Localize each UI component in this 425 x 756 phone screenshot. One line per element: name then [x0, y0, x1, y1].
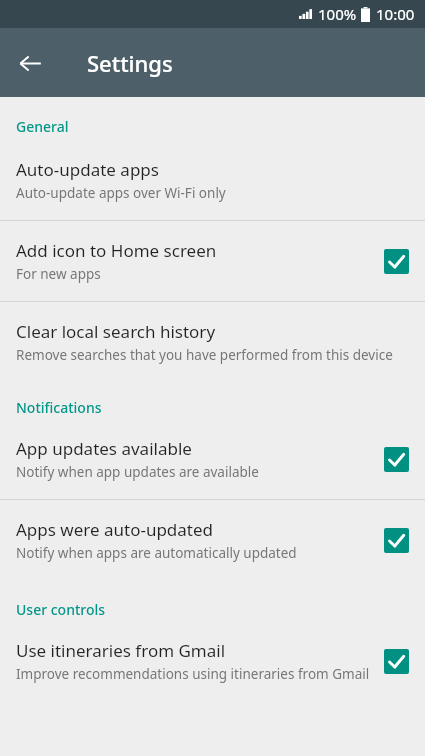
staticText: General [16, 117, 69, 136]
button[interactable]: Navigate up [8, 41, 52, 85]
button[interactable]: Toggle setting [384, 447, 409, 472]
button[interactable]: Auto-update apps [0, 136, 425, 220]
staticText: User controls [16, 600, 106, 619]
button[interactable]: Toggle setting [384, 649, 409, 674]
button[interactable]: Toggle setting [384, 249, 409, 274]
button[interactable]: App updates available [0, 417, 425, 499]
staticText: Notify when app updates are available [16, 463, 259, 481]
button[interactable]: Apps were auto-updated [0, 500, 425, 580]
staticText: Use itineraries from Gmail [16, 639, 226, 662]
staticText: Auto-update apps [16, 158, 159, 181]
staticText: Improve recommendations using itinerarie… [16, 665, 370, 683]
staticText: Add icon to Home screen [16, 239, 217, 262]
staticText: Auto-update apps over Wi-Fi only [16, 184, 226, 202]
button[interactable]: Clear local search history [0, 302, 425, 380]
button[interactable]: Use itineraries from Gmail [0, 619, 425, 701]
button[interactable]: Add icon to Home screen [0, 221, 425, 301]
staticText: Apps were auto-updated [16, 518, 214, 541]
staticText: Settings [87, 48, 173, 78]
staticText: Notifications [16, 398, 102, 417]
staticText: 10:00 [376, 4, 415, 24]
button[interactable]: Toggle setting [384, 528, 409, 553]
staticText: 100% [318, 4, 357, 24]
staticText: App updates available [16, 437, 192, 460]
staticText: Remove searches that you have performed … [16, 346, 393, 364]
staticText: Clear local search history [16, 320, 216, 343]
staticText: For new apps [16, 265, 101, 283]
staticText: Notify when apps are automatically updat… [16, 544, 297, 562]
